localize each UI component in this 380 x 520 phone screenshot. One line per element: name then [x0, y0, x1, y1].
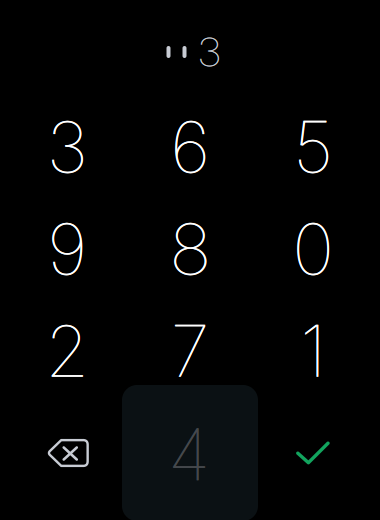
staticText: 7 [171, 308, 210, 394]
button[interactable]: Confirm [258, 405, 368, 501]
button[interactable]: 5 [254, 97, 372, 197]
staticText: 5 [293, 104, 333, 190]
button[interactable]: 9 [8, 199, 126, 299]
staticText: 2 [45, 308, 89, 394]
staticText: 0 [292, 206, 334, 292]
staticText: 8 [169, 206, 211, 292]
staticText: 6 [170, 104, 210, 190]
button[interactable]: 8 [131, 199, 249, 299]
staticText: 3 [198, 28, 219, 76]
staticText: 1 [300, 308, 326, 394]
button[interactable]: 2 [8, 301, 126, 401]
staticText: 4 [168, 412, 210, 497]
staticText: 4 [168, 412, 210, 497]
staticText: 6 [170, 104, 210, 190]
button[interactable]: 1 [254, 301, 372, 401]
button[interactable]: 0 [254, 199, 372, 299]
staticText: 5 [293, 104, 333, 190]
button[interactable]: 3 [8, 97, 126, 197]
button[interactable]: 7 [131, 301, 249, 401]
staticText: 3 [47, 104, 88, 190]
staticText: 3 [199, 28, 220, 76]
staticText: 2 [45, 308, 89, 394]
staticText: 1 [300, 308, 326, 394]
staticText: 9 [47, 206, 87, 292]
button[interactable]: Delete [13, 405, 123, 501]
button[interactable]: 4 [122, 385, 258, 520]
staticText: 0 [292, 206, 334, 292]
staticText: 8 [169, 206, 211, 292]
staticText: 9 [47, 206, 87, 292]
staticText: 3 [46, 104, 87, 190]
button[interactable]: 6 [131, 97, 249, 197]
staticText: 7 [170, 308, 209, 394]
